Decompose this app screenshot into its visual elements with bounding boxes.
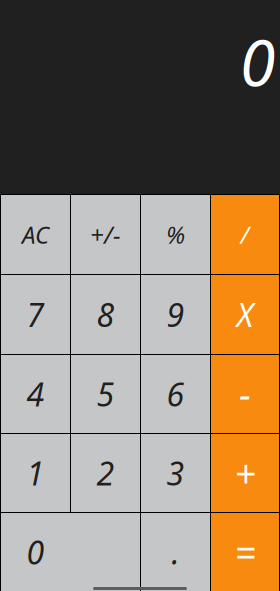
staticText: 1 — [26, 452, 44, 494]
staticText: - — [239, 369, 251, 419]
staticText: AC — [22, 219, 49, 250]
staticText: 5 — [96, 373, 114, 415]
button[interactable]: / — [211, 195, 279, 274]
button[interactable]: X — [211, 275, 279, 354]
button[interactable]: 9 — [141, 275, 210, 354]
staticText: = — [234, 527, 255, 577]
button[interactable]: 8 — [71, 275, 140, 354]
staticText: + — [234, 448, 255, 498]
button[interactable]: +/- — [71, 195, 140, 274]
staticText: 9 — [166, 293, 184, 336]
staticText: 8 — [96, 293, 114, 336]
button[interactable]: - — [211, 355, 279, 433]
button[interactable]: 6 — [141, 355, 210, 433]
button[interactable]: 2 — [71, 434, 140, 512]
staticText: 4 — [26, 373, 44, 415]
button[interactable]: % — [141, 195, 210, 274]
staticText: +/- — [90, 219, 121, 250]
staticText: 7 — [26, 293, 44, 336]
button[interactable]: 3 — [141, 434, 210, 512]
button[interactable]: AC — [1, 195, 70, 274]
staticText: / — [240, 219, 249, 250]
button[interactable]: 4 — [1, 355, 70, 433]
button[interactable]: 7 — [1, 275, 70, 354]
staticText: 3 — [166, 452, 184, 494]
button[interactable]: 0 — [1, 513, 140, 591]
staticText: 0 — [240, 19, 275, 104]
staticText: % — [166, 219, 185, 250]
staticText: X — [236, 293, 253, 336]
staticText: 6 — [166, 373, 184, 415]
button[interactable]: 1 — [1, 434, 70, 512]
button[interactable]: + — [211, 434, 279, 512]
button[interactable]: 5 — [71, 355, 140, 433]
button[interactable]: = — [211, 513, 279, 591]
staticText: 0 — [26, 531, 44, 573]
staticText: . — [171, 531, 179, 573]
button[interactable]: . — [141, 513, 210, 591]
staticText: 2 — [96, 452, 114, 494]
